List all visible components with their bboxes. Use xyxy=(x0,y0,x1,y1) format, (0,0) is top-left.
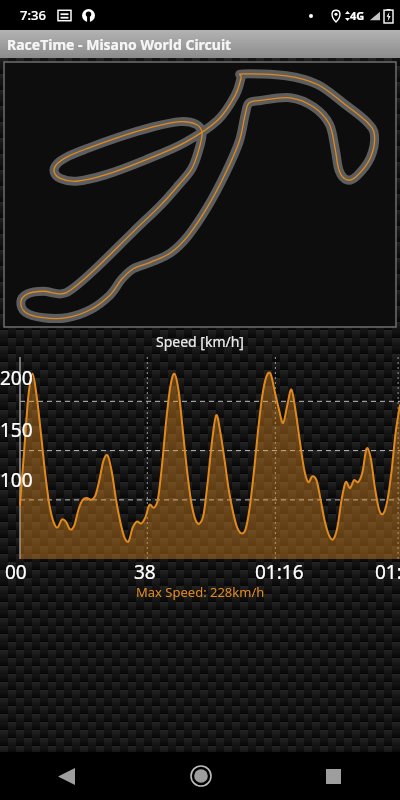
other: Notification xyxy=(58,9,71,22)
staticText: 00 xyxy=(5,559,27,583)
other: App xyxy=(82,9,95,22)
staticText: RaceTime - Misano World Circuit xyxy=(7,35,232,54)
button[interactable]: RaceTime - Misano World Circuit xyxy=(0,30,400,58)
staticText: Speed [km/h] xyxy=(156,332,244,351)
staticText: 38 xyxy=(134,559,156,583)
staticText: Max Speed: 228km/h xyxy=(136,583,265,601)
button[interactable]: Back xyxy=(0,752,133,800)
staticText: 01:16 xyxy=(255,559,304,583)
button[interactable]: Recent apps xyxy=(267,752,400,800)
staticText: 4G xyxy=(350,8,365,23)
button[interactable]: Circuit map xyxy=(4,62,396,327)
staticText: 200 xyxy=(0,365,33,391)
staticText: 100 xyxy=(0,467,33,493)
button[interactable]: Home xyxy=(134,752,267,800)
staticText: 150 xyxy=(0,417,33,443)
staticText: 7:36 xyxy=(20,6,46,24)
staticText: 01: xyxy=(375,559,400,583)
